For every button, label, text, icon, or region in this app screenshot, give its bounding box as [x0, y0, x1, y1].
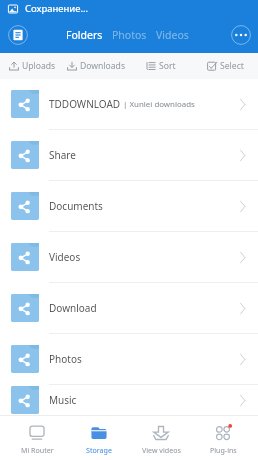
staticText: Share: [49, 148, 76, 162]
staticText: View videos: [142, 445, 181, 455]
staticText: Documents: [49, 199, 103, 213]
button[interactable]: More options: [231, 25, 251, 45]
button[interactable]: Folders: [66, 23, 103, 47]
staticText: Сохранение...: [25, 2, 89, 15]
button[interactable]: TDDOWNLOAD: [0, 79, 258, 130]
button[interactable]: Photos: [0, 334, 258, 385]
button[interactable]: Videos: [0, 232, 258, 283]
button[interactable]: View videos: [130, 416, 192, 460]
button[interactable]: Documents: [0, 181, 258, 232]
staticText: Uploads: [22, 60, 56, 72]
staticText: Videos: [156, 28, 189, 42]
staticText: Music: [49, 393, 77, 407]
button[interactable]: Downloads: [64, 53, 128, 79]
staticText: Photos: [49, 352, 82, 366]
button[interactable]: Storage: [68, 416, 130, 460]
button[interactable]: Photos: [112, 23, 147, 47]
staticText: Plug-ins: [210, 445, 237, 455]
button[interactable]: Download: [0, 283, 258, 334]
button[interactable]: Share: [0, 130, 258, 181]
button[interactable]: Videos: [156, 23, 189, 47]
staticText: | Xunlei downloads: [121, 99, 195, 110]
staticText: Downloads: [80, 60, 126, 72]
staticText: Select: [220, 60, 244, 72]
staticText: Folders: [66, 28, 103, 42]
button[interactable]: Mi Router: [6, 416, 68, 460]
button[interactable]: Select: [193, 53, 258, 79]
staticText: TDDOWNLOAD: [49, 97, 121, 111]
button[interactable]: Sort: [128, 53, 193, 79]
button[interactable]: Notes: [8, 25, 28, 45]
button[interactable]: Uploads: [0, 53, 64, 79]
button[interactable]: Music: [0, 385, 258, 415]
staticText: Photos: [112, 28, 147, 42]
staticText: Videos: [49, 250, 81, 264]
staticText: Sort: [159, 60, 176, 72]
staticText: Download: [49, 301, 97, 315]
staticText: Mi Router: [21, 445, 54, 455]
staticText: Storage: [86, 445, 112, 455]
button[interactable]: Plug-ins: [192, 416, 254, 460]
